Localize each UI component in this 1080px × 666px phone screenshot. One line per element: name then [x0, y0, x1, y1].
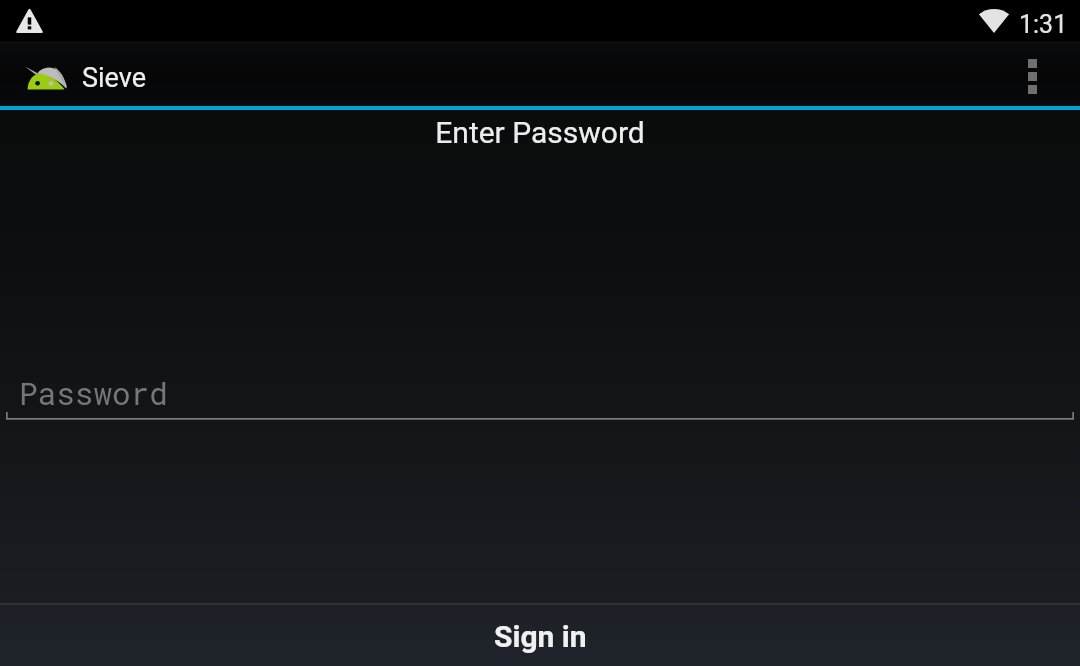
button[interactable]: Sign in: [0, 605, 1080, 666]
button[interactable]: More options: [1010, 42, 1080, 110]
staticText: Sieve: [82, 62, 146, 94]
staticText: 1:31: [1019, 10, 1068, 39]
button[interactable]: Sieve: [0, 42, 146, 110]
other: Warning: [16, 9, 43, 33]
staticText: Enter Password: [0, 115, 1080, 150]
staticText: Sign in: [494, 619, 587, 654]
staticText: Password: [19, 373, 168, 414]
other: Wi-Fi signal: [979, 9, 1009, 33]
button[interactable]: Password: [0, 372, 1080, 422]
